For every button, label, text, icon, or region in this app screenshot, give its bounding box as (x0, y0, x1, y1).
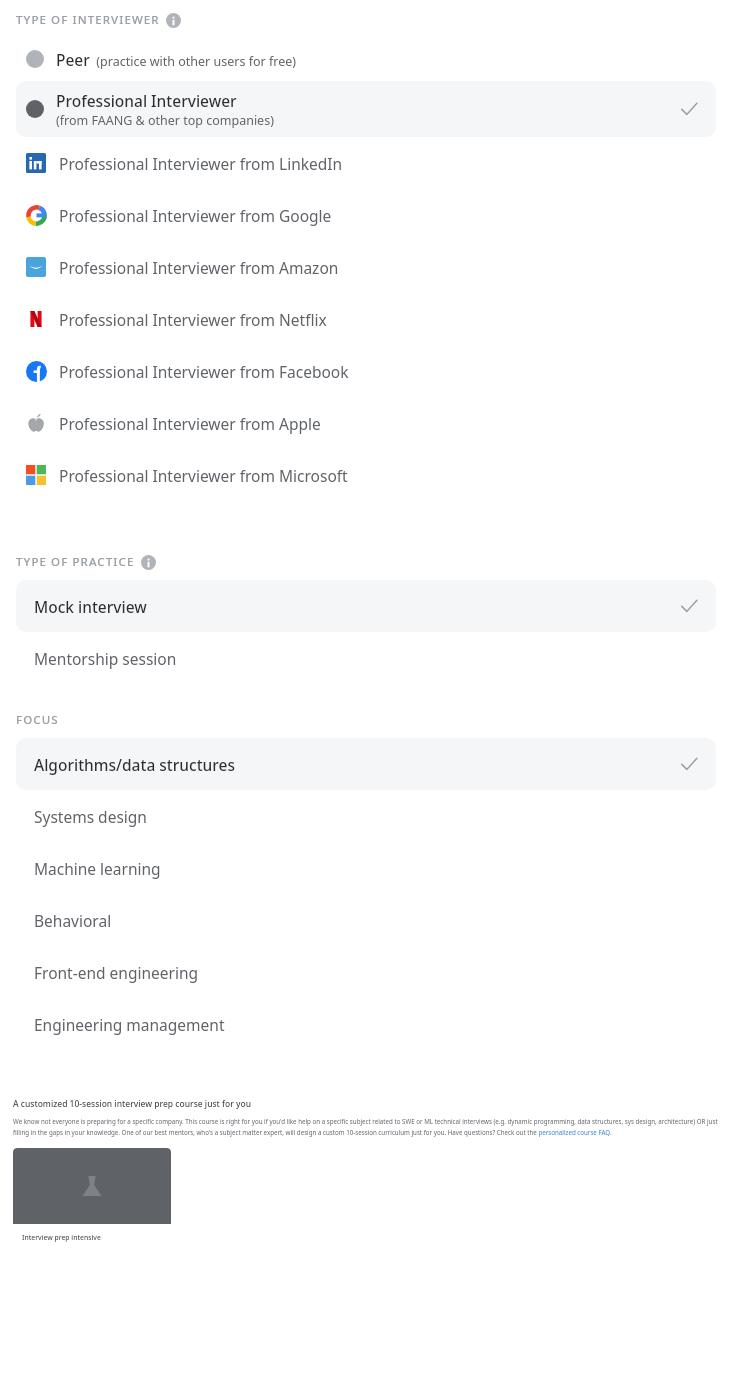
button[interactable]: Peer (practice with other users for free… (16, 37, 716, 81)
button[interactable]: Engineering management (16, 998, 716, 1050)
staticText: Algorithms/data structures (34, 754, 680, 775)
button[interactable]: Professional Interviewer from Microsoft (16, 449, 716, 501)
staticText: Interview prep intensive (22, 1233, 101, 1242)
staticText: TYPE OF INTERVIEWER (16, 12, 160, 28)
staticText: Front-end engineering (34, 962, 698, 983)
button[interactable]: Professional Interviewer (16, 81, 716, 137)
staticText: Professional Interviewer from LinkedIn (59, 153, 343, 174)
staticText: Professional Interviewer from Apple (59, 413, 321, 434)
staticText: Professional Interviewer (56, 90, 237, 111)
button[interactable]: Professional Interviewer from Netflix (16, 293, 716, 345)
button[interactable]: Professional Interviewer from LinkedIn (16, 137, 716, 189)
staticText: Mentorship session (34, 648, 698, 669)
button[interactable]: Mentorship session (16, 632, 716, 684)
staticText: A customized 10-session interview prep c… (13, 1098, 252, 1110)
staticText: Professional Interviewer from Amazon (59, 257, 339, 278)
staticText: We know not everyone is preparing for a … (13, 1117, 719, 1136)
staticText: Behavioral (34, 910, 698, 931)
button[interactable]: Professional Interviewer from Amazon (16, 241, 716, 293)
button[interactable]: Systems design (16, 790, 716, 842)
button[interactable]: Interview prep intensive (13, 1148, 171, 1262)
staticText: Professional Interviewer from Google (59, 205, 332, 226)
staticText: Professional Interviewer from Netflix (59, 309, 327, 330)
staticText: Machine learning (34, 858, 698, 879)
staticText: FOCUS (16, 712, 59, 728)
button[interactable]: Front-end engineering (16, 946, 716, 998)
staticText: (from FAANG & other top companies) (56, 112, 274, 129)
staticText: Peer (practice with other users for free… (56, 49, 297, 70)
button[interactable]: Professional Interviewer from Google (16, 189, 716, 241)
button[interactable]: Behavioral (16, 894, 716, 946)
button[interactable]: Mock interview (16, 580, 716, 632)
staticText: Mock interview (34, 596, 680, 617)
staticText: Engineering management (34, 1014, 698, 1035)
staticText: Professional Interviewer from Facebook (59, 361, 349, 382)
button[interactable]: Professional Interviewer from Apple (16, 397, 716, 449)
button[interactable]: Machine learning (16, 842, 716, 894)
button[interactable]: Algorithms/data structures (16, 738, 716, 790)
staticText: TYPE OF PRACTICE (16, 554, 135, 570)
staticText: Professional Interviewer from Microsoft (59, 465, 348, 486)
button[interactable]: Professional Interviewer from Facebook (16, 345, 716, 397)
staticText: Systems design (34, 806, 698, 827)
